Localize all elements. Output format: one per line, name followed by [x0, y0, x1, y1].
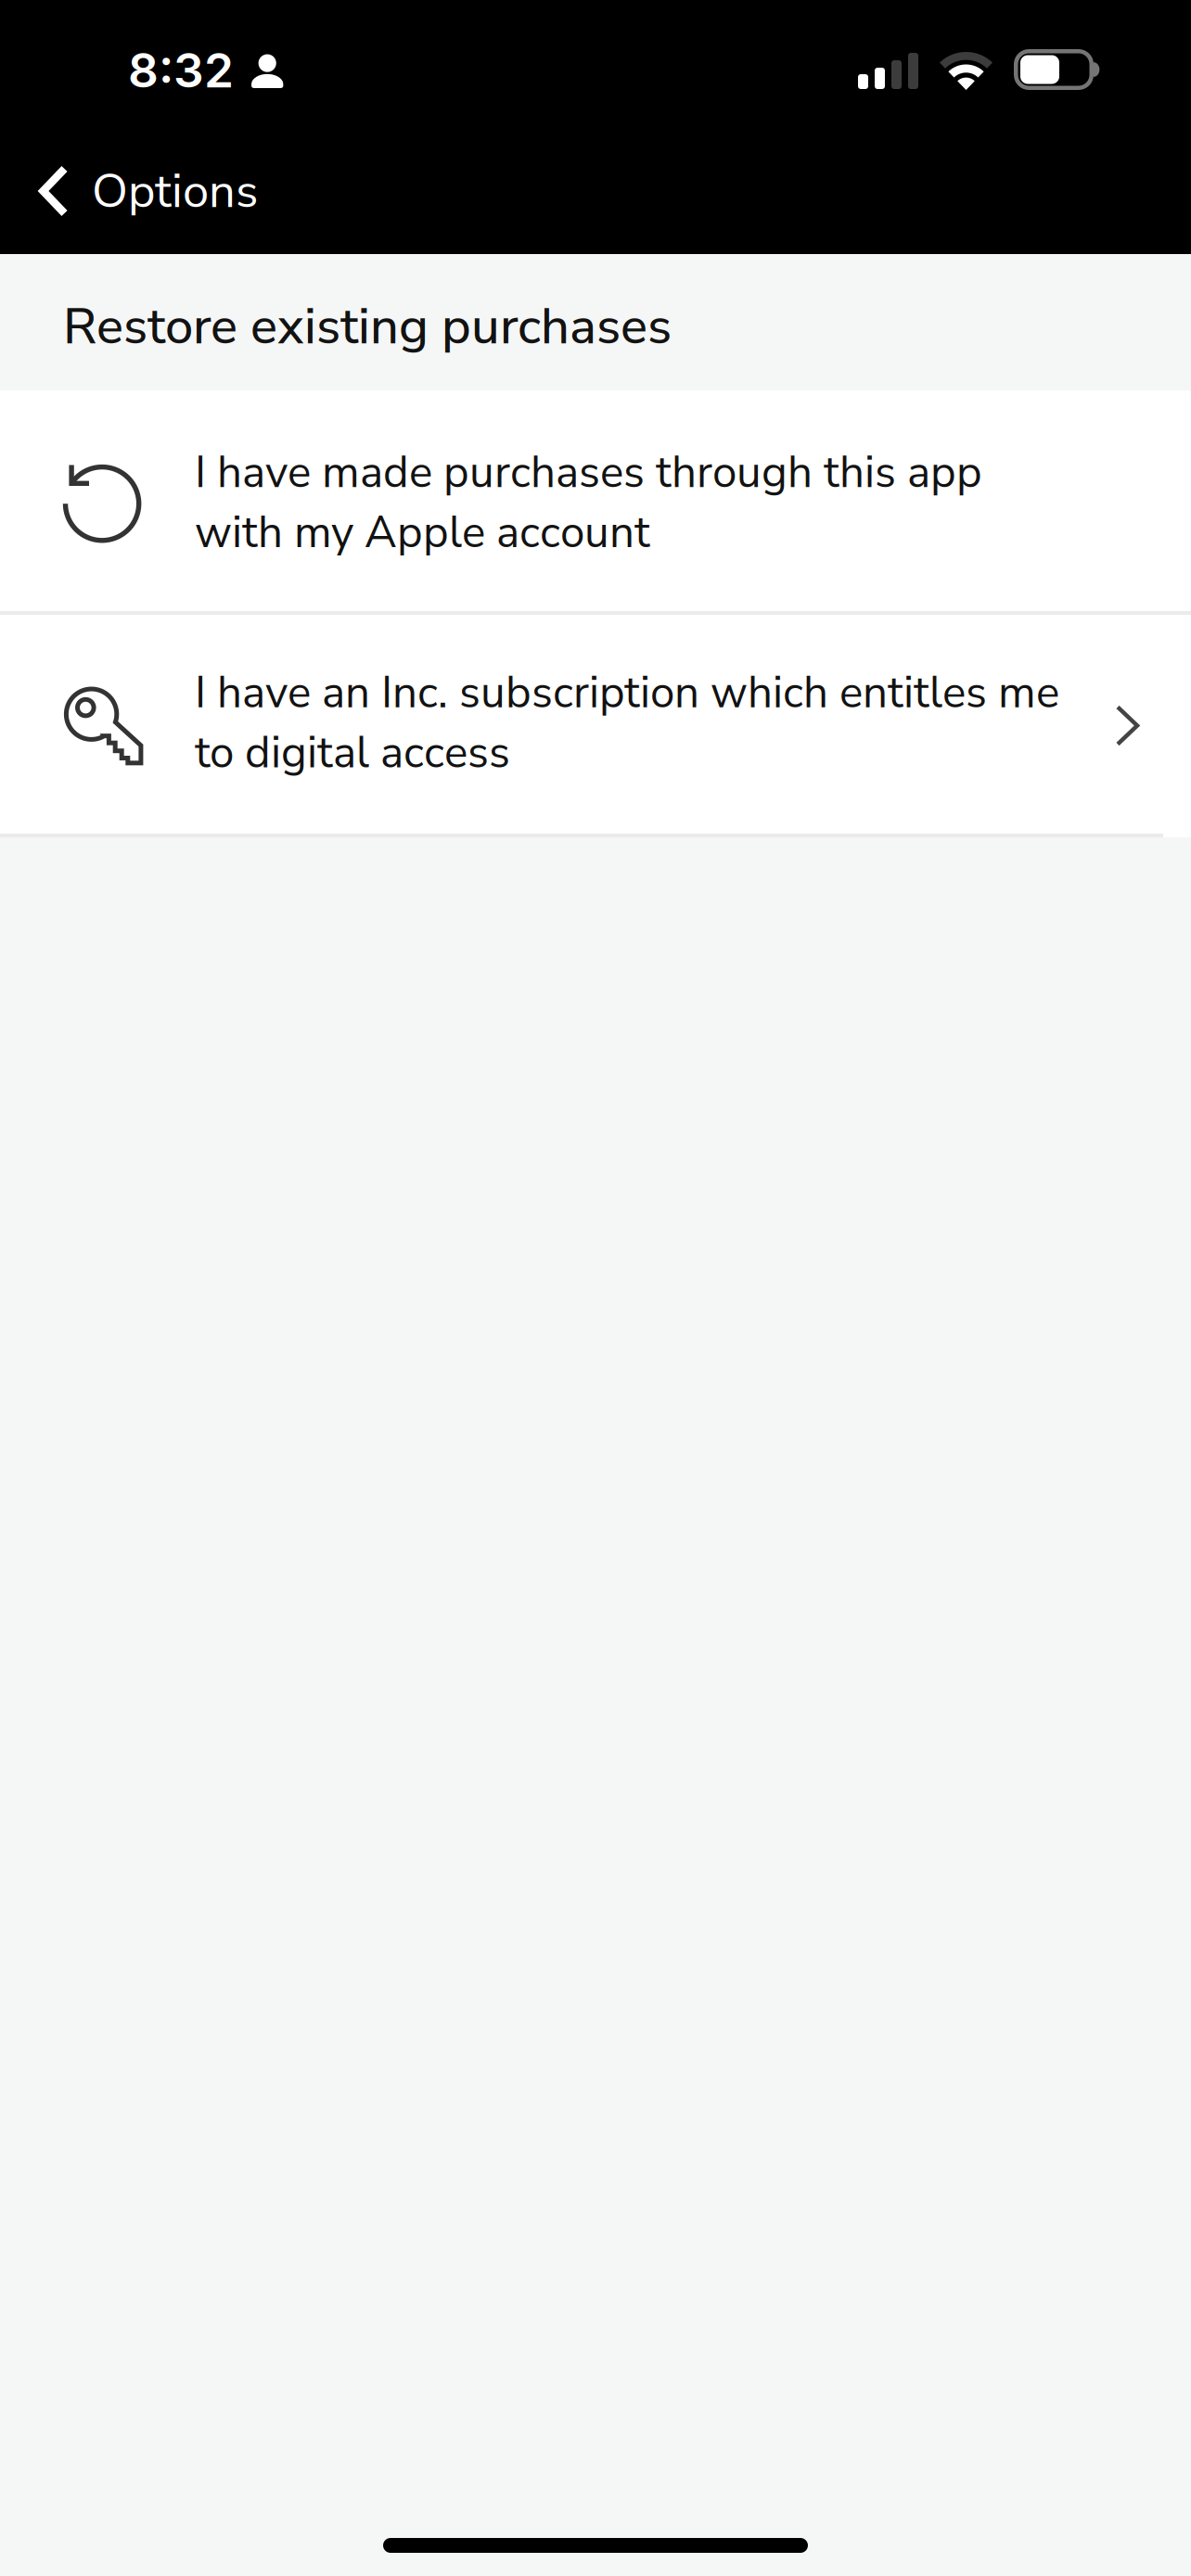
staticText: Restore existing purchases — [63, 293, 672, 361]
staticText: 8:32 — [128, 41, 234, 99]
button[interactable]: Options — [0, 127, 286, 254]
button[interactable]: I have an Inc. subscription which entitl… — [0, 615, 1191, 834]
staticText: I have an Inc. subscription which entitl… — [195, 663, 1059, 783]
staticText: I have made purchases through this app w… — [195, 443, 982, 563]
button[interactable]: I have made purchases through this app w… — [0, 390, 1191, 611]
staticText: Options — [92, 159, 258, 223]
